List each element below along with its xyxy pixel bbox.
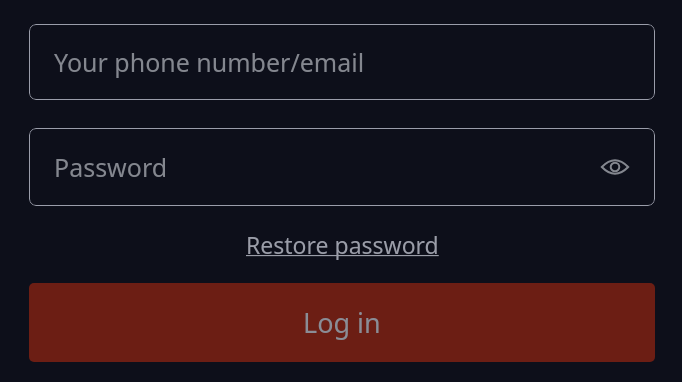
staticText: Password xyxy=(54,150,595,184)
button[interactable]: Log in xyxy=(29,283,655,362)
button[interactable]: Restore password xyxy=(242,226,443,263)
button[interactable]: Your phone number/email xyxy=(29,24,655,100)
button[interactable]: Show password xyxy=(595,147,635,187)
button[interactable]: Password xyxy=(29,128,655,206)
staticText: Your phone number/email xyxy=(54,45,365,79)
staticText: Log in xyxy=(303,304,381,341)
staticText: Restore password xyxy=(246,229,439,260)
